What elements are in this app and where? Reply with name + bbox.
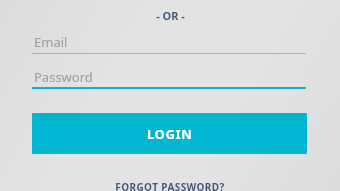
button[interactable]: FORGOT PASSWORD? bbox=[0, 176, 340, 191]
staticText: Password bbox=[34, 68, 93, 86]
staticText: - OR - bbox=[156, 8, 185, 23]
button[interactable]: Password bbox=[32, 65, 306, 89]
button[interactable]: Email bbox=[32, 30, 306, 54]
button[interactable]: LOGIN bbox=[32, 113, 307, 154]
staticText: Email bbox=[34, 33, 68, 51]
staticText: FORGOT PASSWORD? bbox=[115, 180, 225, 191]
staticText: LOGIN bbox=[147, 125, 193, 143]
